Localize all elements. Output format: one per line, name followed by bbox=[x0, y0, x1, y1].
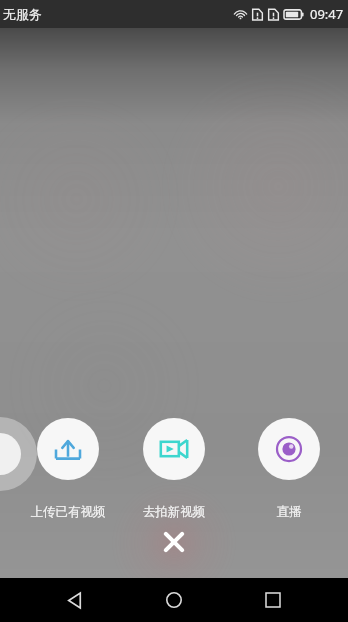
button[interactable]: 最近任务 bbox=[249, 578, 297, 622]
staticText: 无服务 bbox=[3, 6, 42, 22]
staticText: 直播 bbox=[245, 504, 333, 520]
staticText: 09:47 bbox=[310, 5, 344, 23]
staticText: 上传已有视频 bbox=[24, 504, 112, 520]
button[interactable]: 返回 bbox=[51, 578, 99, 622]
button[interactable]: 上传已有视频 bbox=[24, 418, 112, 520]
button[interactable]: 主页 bbox=[150, 578, 198, 622]
button[interactable]: 去拍新视频 bbox=[130, 418, 218, 520]
button[interactable]: 直播 bbox=[245, 418, 333, 520]
button[interactable]: 关闭 bbox=[152, 520, 196, 564]
staticText: 去拍新视频 bbox=[130, 504, 218, 520]
